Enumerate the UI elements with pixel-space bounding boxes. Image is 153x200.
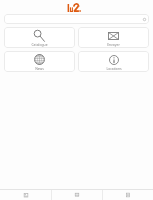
staticText: News xyxy=(35,66,44,71)
button[interactable]: Envoyer xyxy=(78,27,149,48)
staticText: Envoyer xyxy=(107,42,120,47)
button[interactable]: News xyxy=(4,51,75,72)
button[interactable]: Search xyxy=(4,14,149,24)
button[interactable]: Delivery xyxy=(52,190,102,200)
button[interactable]: Locations xyxy=(78,51,149,72)
staticText: Catalogue xyxy=(31,42,48,47)
button[interactable]: Shop xyxy=(0,190,51,200)
button[interactable]: Contact xyxy=(103,190,153,200)
button[interactable]: Catalogue xyxy=(4,27,75,48)
staticText: Locations xyxy=(106,66,122,71)
